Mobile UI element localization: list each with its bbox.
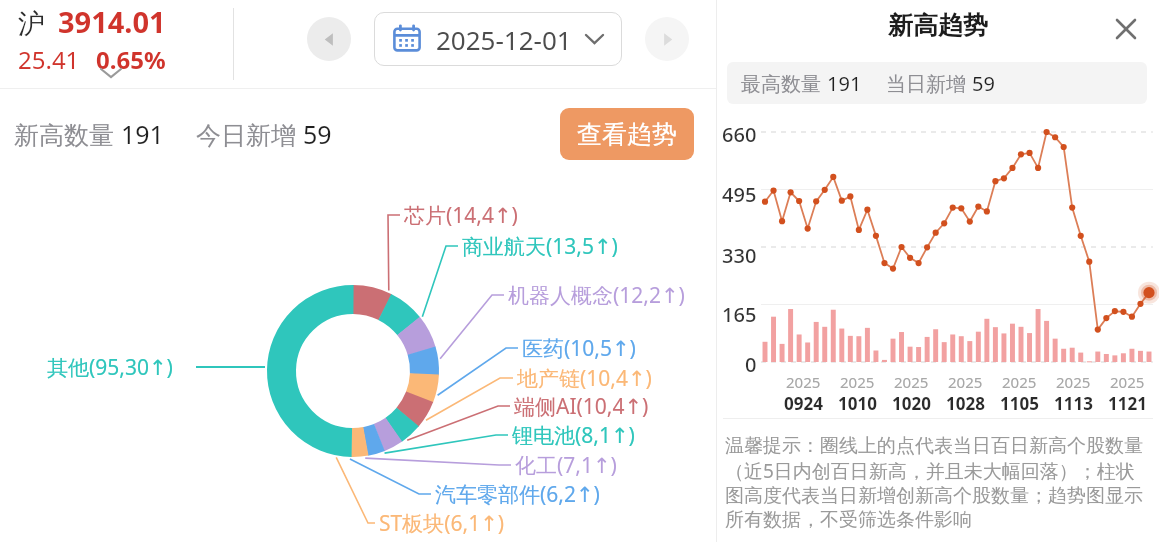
staticText: 化工(7,1↑) [515,451,617,480]
staticText: 25.41 [18,43,80,76]
staticText: 今日新增 [196,117,303,151]
staticText: 1105 [1000,392,1039,415]
staticText: 2025 [1110,372,1145,392]
staticText: 59 [972,70,995,97]
staticText: 新高数量 [14,117,121,151]
staticText: 191 [827,70,862,97]
staticText: 医药(10,5↑) [522,334,636,363]
staticText: 最高数量 [741,70,827,97]
staticText: 其他(95,30↑) [47,353,173,382]
staticText: 2025 [840,372,875,392]
staticText: 沪 [18,7,45,41]
staticText: 1113 [1054,392,1093,415]
staticText: 新高趋势 [888,10,988,41]
staticText: 1010 [838,392,877,415]
staticText: 2025 [894,372,929,392]
button[interactable]: Close [1105,8,1147,50]
staticText: 所有数据，不受筛选条件影响 [725,508,972,532]
button[interactable]: 2025-12-01 [374,12,622,66]
staticText: 165 [722,301,757,328]
staticText: 端侧AI(10,4↑) [514,392,649,421]
staticText: 3914.01 [58,2,166,41]
staticText: 0.65% [96,43,166,76]
staticText: 当日新增 [886,70,972,97]
staticText: 59 [303,117,332,151]
staticText: 图高度代表当日新增创新高个股数量；趋势图显示 [725,484,1143,508]
staticText: 2025 [1002,372,1037,392]
staticText: 芯片(14,4↑) [404,201,518,230]
staticText: （近5日内创百日新高，并且未大幅回落）；柱状 [725,458,1135,484]
staticText: 1028 [946,392,985,415]
staticText: 191 [121,117,164,151]
button[interactable]: Next day [645,17,689,61]
staticText: 2025-12-01 [436,22,572,57]
staticText: 地产链(10,4↑) [517,364,652,393]
staticText: 汽车零部件(6,2↑) [435,480,600,509]
button[interactable]: 查看趋势 [560,108,694,160]
staticText: 0924 [784,392,823,415]
staticText: 2025 [948,372,983,392]
staticText: 查看趋势 [577,119,677,150]
staticText: 660 [722,121,757,148]
staticText: 330 [722,242,757,269]
staticText: 1121 [1108,392,1147,415]
staticText: 2025 [1056,372,1091,392]
button[interactable]: Previous day [307,17,351,61]
staticText: 机器人概念(12,2↑) [508,281,685,310]
staticText: 温馨提示：圈线上的点代表当日百日新高个股数量 [725,434,1143,458]
staticText: 495 [722,181,757,208]
staticText: 1020 [892,392,931,415]
staticText: 2025 [786,372,821,392]
staticText: 0 [745,351,757,378]
staticText: 锂电池(8,1↑) [512,421,635,450]
staticText: ST板块(6,1↑) [379,509,505,538]
staticText: 商业航天(13,5↑) [462,232,618,261]
